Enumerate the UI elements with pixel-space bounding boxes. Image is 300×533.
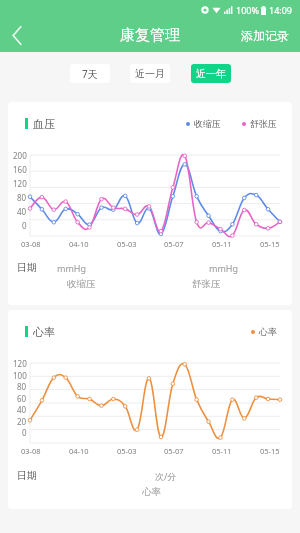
staticText: 05-15 <box>260 446 280 456</box>
staticText: 05-11 <box>212 239 232 249</box>
staticText: 近一年 <box>196 67 226 80</box>
staticText: 收缩压 <box>194 118 221 129</box>
staticText: 05-15 <box>260 239 280 249</box>
staticText: 03-08 <box>21 446 41 456</box>
staticText: 40 <box>17 404 27 415</box>
staticText: 80 <box>17 381 27 392</box>
button[interactable]: 近一年 <box>191 64 231 83</box>
staticText: 80 <box>17 192 27 203</box>
staticText: 120 <box>13 358 27 369</box>
staticText: 05-11 <box>212 446 232 456</box>
staticText: 40 <box>17 206 27 217</box>
staticText: 添加记录 <box>241 28 289 43</box>
staticText: 心率 <box>33 325 55 337</box>
staticText: 心率 <box>142 486 161 498</box>
staticText: 05-03 <box>117 239 137 249</box>
staticText: 120 <box>13 178 27 189</box>
staticText: 03-08 <box>21 239 41 249</box>
staticText: 04-10 <box>69 239 89 249</box>
staticText: 100% <box>236 4 259 16</box>
staticText: 心率 <box>259 326 277 337</box>
staticText: mmHg <box>57 262 87 274</box>
button[interactable]: Back <box>0 19 34 52</box>
button[interactable]: 近一月 <box>130 64 170 83</box>
staticText: 200 <box>13 150 27 161</box>
staticText: 康复管理 <box>120 26 180 45</box>
staticText: 160 <box>13 164 27 175</box>
staticText: 7天 <box>82 67 98 81</box>
staticText: 14:09 <box>269 4 293 16</box>
staticText: 0 <box>22 427 27 438</box>
staticText: 100 <box>13 370 27 381</box>
staticText: 05-03 <box>117 446 137 456</box>
staticText: 05-07 <box>164 239 184 249</box>
staticText: 04-10 <box>69 446 89 456</box>
staticText: 次/分 <box>155 470 177 482</box>
staticText: 近一月 <box>135 67 165 80</box>
staticText: 0 <box>22 220 27 231</box>
staticText: 舒张压 <box>192 278 221 290</box>
button[interactable]: 7天 <box>70 64 110 83</box>
staticText: 20 <box>17 416 27 427</box>
staticText: 血压 <box>33 117 55 129</box>
staticText: 日期 <box>17 469 37 482</box>
staticText: 舒张压 <box>250 118 277 129</box>
staticText: 60 <box>17 393 27 404</box>
staticText: 05-07 <box>164 446 184 456</box>
staticText: 收缩压 <box>67 278 96 290</box>
button[interactable]: 添加记录 <box>231 21 300 50</box>
staticText: 日期 <box>17 261 37 274</box>
staticText: mmHg <box>209 262 239 274</box>
